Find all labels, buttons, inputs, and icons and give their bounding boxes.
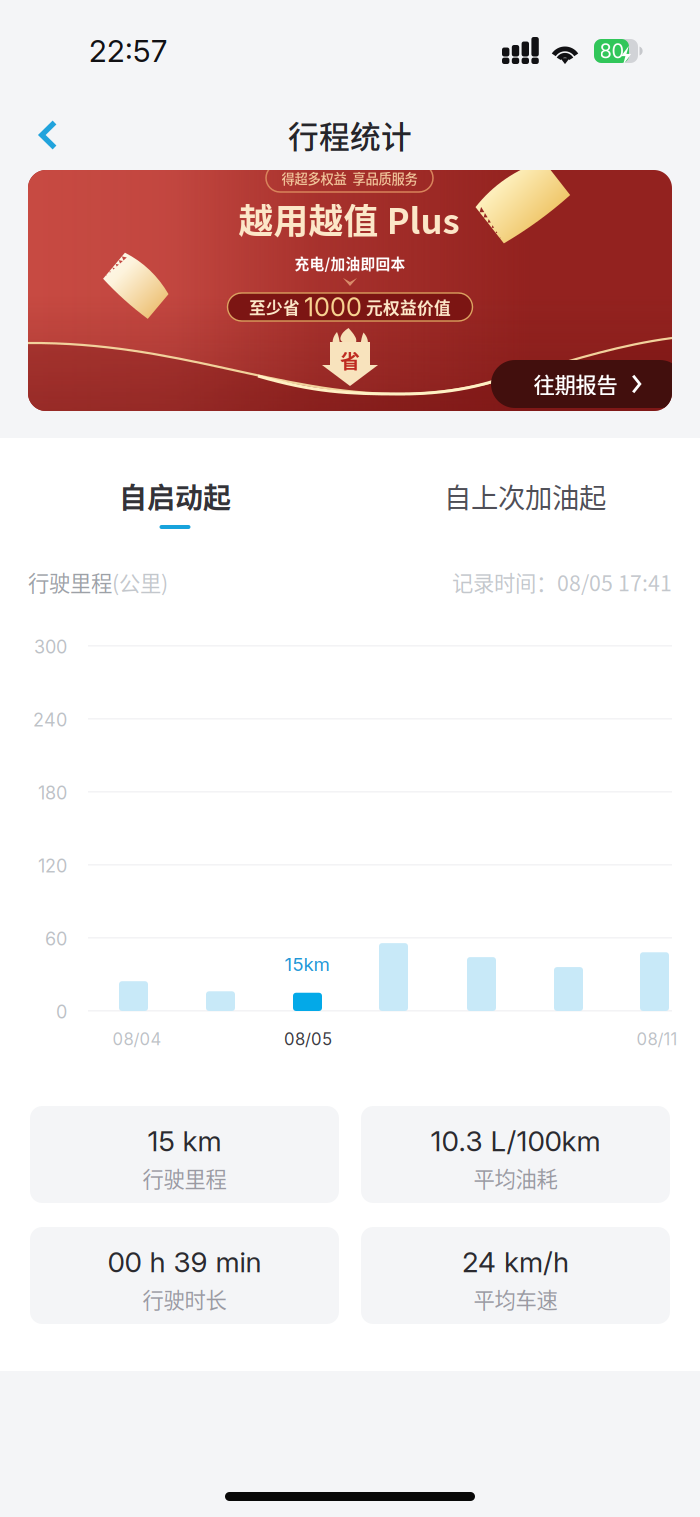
staticText: 80 [599, 39, 624, 63]
staticText: 180 [38, 782, 67, 804]
staticText: 记录时间：08/05 17:41 [452, 567, 672, 597]
staticText: 充电/加油即回本 [294, 252, 405, 274]
staticText: 1000 [304, 292, 362, 322]
staticText: 行程统计 [288, 113, 412, 157]
staticText: 平均车速 [473, 1284, 557, 1314]
staticText: 08/05 [284, 1029, 332, 1049]
staticText: 22:57 [89, 33, 167, 69]
staticText: (公里) [112, 567, 168, 597]
staticText: 元权益价值 [362, 295, 451, 319]
staticText: 省 [340, 345, 360, 374]
staticText: 行驶里程 [28, 567, 112, 597]
staticText: 0 [56, 1001, 67, 1023]
staticText: 08/04 [112, 1029, 161, 1049]
staticText: 08/11 [636, 1029, 677, 1049]
staticText: 15 km [147, 1124, 221, 1158]
staticText: 120 [38, 855, 67, 877]
button[interactable]: 往期报告 [491, 360, 684, 408]
button[interactable]: Back [16, 107, 80, 163]
staticText: 行驶时长 [142, 1284, 226, 1314]
staticText: 10.3 L/100km [430, 1124, 600, 1158]
button[interactable]: 自启动起 [0, 462, 350, 546]
staticText: 至少省 [249, 295, 304, 319]
staticText: 24 km/h [462, 1245, 569, 1279]
button[interactable]: 自上次加油起 [350, 462, 700, 546]
staticText: 往期报告 [533, 369, 617, 399]
staticText: 00 h 39 min [107, 1245, 261, 1279]
staticText: 240 [33, 709, 67, 731]
staticText: 15km [284, 953, 329, 976]
staticText: 300 [34, 636, 67, 658]
staticText: 平均油耗 [473, 1163, 557, 1193]
staticText: 60 [45, 928, 67, 950]
staticText: 自启动起 [119, 476, 231, 516]
staticText: 得超多权益 享品质服务 [281, 168, 417, 188]
staticText: 行驶里程 [142, 1163, 226, 1193]
staticText: 越用越值 Plus [238, 194, 459, 244]
staticText: 自上次加油起 [444, 476, 606, 516]
